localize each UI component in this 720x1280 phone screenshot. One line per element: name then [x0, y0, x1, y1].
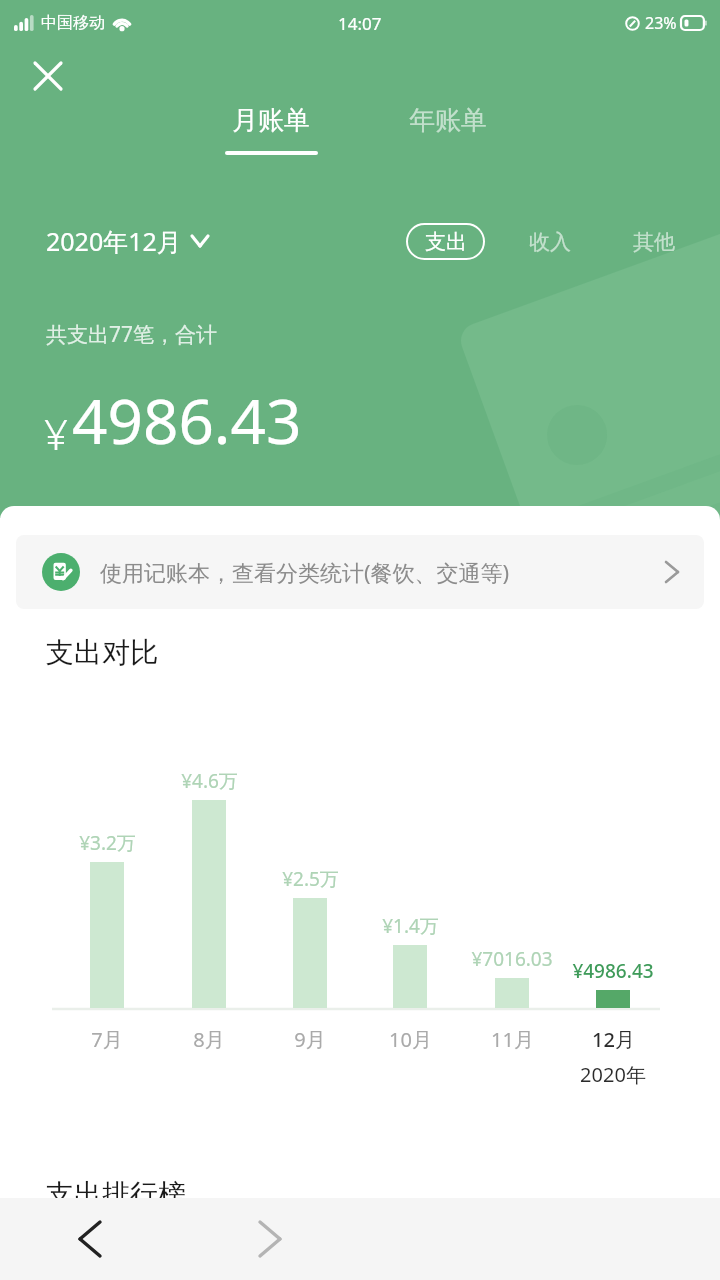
staticText: ¥3.2万 [79, 830, 136, 856]
staticText: ¥ [44, 405, 68, 462]
staticText: 11月 [491, 1026, 534, 1053]
button[interactable]: 2020年12月 [40, 220, 214, 262]
button[interactable]: Forward [180, 1198, 360, 1280]
button[interactable]: 支出 [406, 223, 485, 260]
staticText: 23% [645, 12, 677, 34]
staticText: 8月 [193, 1026, 225, 1053]
staticText: ¥7016.03 [471, 946, 553, 972]
button[interactable]: 使用记账本，查看分类统计(餐饮、交通等) [16, 535, 704, 609]
button[interactable]: 年账单 [385, 104, 511, 150]
staticText: 支出排行榜 [46, 1177, 186, 1206]
staticText: 7月 [91, 1026, 123, 1053]
staticText: 月账单 [232, 104, 310, 137]
staticText: 使用记账本，查看分类统计(餐饮、交通等) [100, 557, 510, 587]
button[interactable]: Close [22, 50, 74, 102]
staticText: 14:07 [338, 12, 382, 35]
staticText: 共支出77笔，合计 [46, 320, 218, 349]
staticText: 10月 [389, 1026, 432, 1053]
staticText: 其他 [633, 229, 675, 255]
staticText: 收入 [529, 229, 571, 255]
button[interactable]: Back [0, 1198, 180, 1280]
staticText: ¥4986.43 [572, 958, 654, 984]
staticText: 2020年 [580, 1061, 646, 1088]
button[interactable]: 其他 [616, 223, 692, 260]
staticText: 年账单 [409, 104, 487, 137]
staticText: 支出对比 [46, 635, 158, 670]
button[interactable]: 月账单 [208, 104, 334, 155]
staticText: 支出 [425, 229, 467, 255]
staticText: 2020年12月 [46, 224, 182, 258]
staticText: 4986.43 [72, 378, 302, 462]
staticText: ¥1.4万 [382, 913, 439, 939]
button[interactable]: 收入 [512, 223, 588, 260]
staticText: ¥2.5万 [282, 866, 339, 892]
staticText: 中国移动 [41, 13, 105, 33]
staticText: 12月 [592, 1026, 635, 1053]
staticText: 9月 [294, 1026, 326, 1053]
staticText: ¥4.6万 [181, 768, 238, 794]
